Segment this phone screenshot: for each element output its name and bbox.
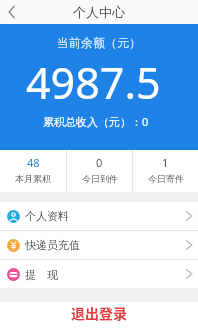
staticText: 快递员充值: [25, 238, 80, 252]
button[interactable]: 退出登录: [0, 302, 198, 330]
staticText: 今日寄件: [148, 173, 184, 184]
staticText: 个人中心: [73, 4, 125, 20]
button[interactable]: 1: [133, 150, 198, 192]
staticText: 4987.5: [26, 53, 161, 112]
staticText: 48: [27, 155, 40, 170]
staticText: 今日到件: [82, 173, 118, 184]
staticText: 1: [162, 155, 169, 170]
staticText: 当前余额（元）: [57, 35, 141, 50]
staticText: 本月累积: [15, 173, 51, 184]
staticText: 提 现: [25, 267, 58, 282]
button[interactable]: 快递员充值: [0, 231, 198, 259]
button[interactable]: 48: [0, 150, 66, 192]
button[interactable]: 0: [67, 150, 132, 192]
staticText: 个人资料: [25, 209, 69, 223]
staticText: 退出登录: [71, 303, 127, 323]
staticText: 累积总收入（元）：0: [43, 114, 149, 129]
button[interactable]: 个人资料: [0, 202, 198, 230]
button[interactable]: [7, 6, 17, 18]
button[interactable]: 提 现: [0, 260, 198, 288]
staticText: 0: [96, 155, 103, 170]
